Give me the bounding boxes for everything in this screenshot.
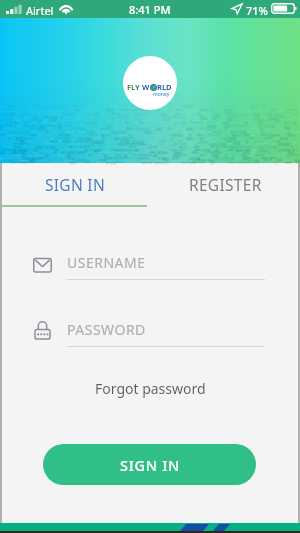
staticText: SIGN IN [120, 455, 180, 475]
staticText: SIGN IN [45, 174, 105, 195]
staticText: RLD [157, 82, 172, 92]
staticText: FLY [127, 82, 140, 92]
button[interactable]: SIGN IN [0, 163, 150, 206]
staticText: Airtel [26, 3, 54, 18]
button[interactable]: Forgot password [85, 375, 216, 402]
staticText: 71% [246, 3, 268, 18]
button[interactable]: REGISTER [150, 163, 300, 206]
staticText: REGISTER [189, 174, 262, 195]
button[interactable]: SIGN IN [43, 444, 256, 485]
other: Username [33, 256, 52, 275]
staticText: 8:41 PM [129, 2, 171, 17]
staticText: money [153, 91, 170, 98]
other: Password [33, 321, 52, 340]
staticText: Forgot password [95, 379, 206, 398]
staticText: W [142, 82, 150, 92]
staticText: PASSWORD [67, 320, 146, 339]
staticText: USERNAME [67, 253, 146, 272]
